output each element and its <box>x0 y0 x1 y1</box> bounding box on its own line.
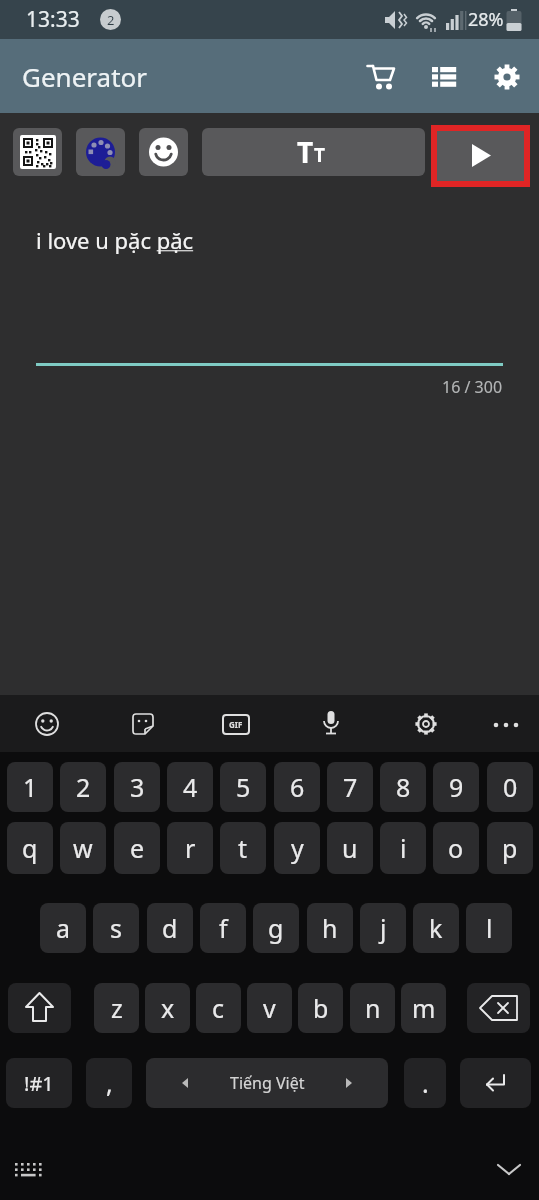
staticText: j <box>380 911 387 945</box>
button[interactable]: d <box>147 903 193 953</box>
staticText: . <box>422 1066 429 1100</box>
staticText: T <box>314 142 325 168</box>
button[interactable]: 1 <box>7 762 53 812</box>
staticText: 2 <box>76 770 91 804</box>
button[interactable] <box>8 983 71 1033</box>
button[interactable] <box>420 54 468 100</box>
button[interactable]: x <box>145 983 190 1033</box>
button[interactable]: t <box>220 822 266 874</box>
button[interactable] <box>357 54 405 100</box>
button[interactable]: g <box>253 903 299 953</box>
staticText: i <box>400 831 407 865</box>
staticText: 28% <box>468 7 504 32</box>
staticText: d <box>162 911 178 945</box>
staticText: b <box>313 991 329 1025</box>
button[interactable]: 8 <box>380 762 426 812</box>
staticText: i love u pặc pặc <box>36 225 194 255</box>
staticText: Tiếng Việt <box>230 1072 305 1094</box>
button[interactable]: e <box>114 822 160 874</box>
button[interactable]: h <box>307 903 353 953</box>
staticText: l <box>486 911 493 945</box>
staticText: e <box>130 831 145 865</box>
staticText: g <box>268 911 284 945</box>
button[interactable] <box>139 128 188 176</box>
button[interactable]: 0 <box>487 762 533 812</box>
staticText: r <box>185 831 196 865</box>
button[interactable] <box>13 128 62 176</box>
button[interactable]: j <box>360 903 406 953</box>
staticText: 7 <box>343 770 358 804</box>
staticText: Generator <box>22 59 147 94</box>
button[interactable]: 5 <box>220 762 266 812</box>
staticText: 6 <box>290 770 305 804</box>
staticText: w <box>73 831 93 865</box>
button[interactable]: 6 <box>274 762 320 812</box>
staticText: 16 / 300 <box>442 376 503 398</box>
button[interactable]: b <box>298 983 343 1033</box>
staticText: o <box>448 831 464 865</box>
button[interactable]: i <box>380 822 426 874</box>
button[interactable]: Tiếng Việt <box>146 1058 388 1108</box>
button[interactable]: . <box>404 1058 446 1108</box>
button[interactable]: T <box>202 128 425 176</box>
staticText: !#1 <box>24 1070 54 1097</box>
button[interactable]: 2 <box>60 762 106 812</box>
button[interactable]: o <box>433 822 479 874</box>
staticText: y <box>291 831 304 865</box>
button[interactable] <box>487 1150 531 1190</box>
staticText: 0 <box>503 770 518 804</box>
button[interactable]: q <box>7 822 53 874</box>
staticText: u <box>342 831 358 865</box>
staticText: n <box>365 991 381 1025</box>
staticText: v <box>263 991 276 1025</box>
button[interactable]: 4 <box>167 762 213 812</box>
button[interactable] <box>484 702 528 746</box>
staticText: 9 <box>449 770 464 804</box>
button[interactable] <box>404 702 448 746</box>
button[interactable]: p <box>487 822 533 874</box>
button[interactable]: GIF <box>214 702 258 746</box>
staticText: s <box>110 911 122 945</box>
staticText: 3 <box>130 770 145 804</box>
button[interactable]: !#1 <box>6 1058 72 1108</box>
button[interactable]: n <box>350 983 395 1033</box>
staticText: 2 <box>107 11 115 29</box>
button[interactable]: y <box>274 822 320 874</box>
button[interactable] <box>483 54 531 100</box>
button[interactable]: , <box>86 1058 132 1108</box>
button[interactable]: 9 <box>433 762 479 812</box>
staticText: h <box>322 911 338 945</box>
button[interactable] <box>8 1150 52 1190</box>
button[interactable] <box>76 128 125 176</box>
button[interactable]: a <box>40 903 86 953</box>
button[interactable]: u <box>327 822 373 874</box>
button[interactable]: z <box>94 983 139 1033</box>
button[interactable] <box>467 983 530 1033</box>
button[interactable]: f <box>200 903 246 953</box>
button[interactable]: k <box>413 903 459 953</box>
button[interactable] <box>437 131 524 181</box>
button[interactable]: v <box>247 983 292 1033</box>
staticText: q <box>22 831 38 865</box>
button[interactable]: c <box>196 983 241 1033</box>
staticText: GIF <box>229 719 243 730</box>
staticText: z <box>111 991 123 1025</box>
button[interactable] <box>309 702 353 746</box>
staticText: k <box>429 911 443 945</box>
staticText: 4 <box>183 770 198 804</box>
button[interactable]: l <box>466 903 512 953</box>
button[interactable] <box>25 702 69 746</box>
staticText: , <box>106 1066 113 1100</box>
button[interactable]: s <box>93 903 139 953</box>
staticText: 5 <box>236 770 251 804</box>
button[interactable]: r <box>167 822 213 874</box>
button[interactable] <box>121 702 165 746</box>
staticText: c <box>212 991 225 1025</box>
button[interactable]: 7 <box>327 762 373 812</box>
button[interactable]: w <box>60 822 106 874</box>
staticText: t <box>238 831 248 865</box>
button[interactable]: 3 <box>114 762 160 812</box>
button[interactable] <box>460 1058 531 1108</box>
button[interactable]: m <box>401 983 446 1033</box>
staticText: m <box>412 991 436 1025</box>
